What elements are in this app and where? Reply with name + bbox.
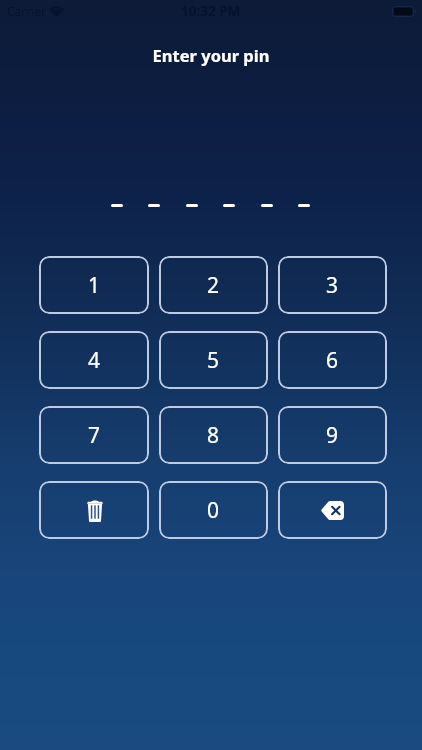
staticText: 2 xyxy=(207,271,220,300)
staticText: 3 xyxy=(326,271,339,300)
staticText: 7 xyxy=(88,421,101,450)
button[interactable]: 8 xyxy=(159,406,268,464)
button[interactable]: 0 xyxy=(159,481,268,539)
staticText: 10:32 PM xyxy=(181,2,241,20)
button[interactable]: 4 xyxy=(39,331,149,389)
button[interactable]: Clear xyxy=(39,481,149,539)
button[interactable]: 9 xyxy=(278,406,387,464)
staticText: 8 xyxy=(207,421,220,450)
staticText: 0 xyxy=(207,496,220,525)
button[interactable]: 2 xyxy=(159,256,268,314)
staticText: 5 xyxy=(207,346,220,375)
staticText: 9 xyxy=(326,421,339,450)
button[interactable]: 7 xyxy=(39,406,149,464)
staticText: 4 xyxy=(88,346,101,375)
staticText: 1 xyxy=(88,271,101,300)
staticText: 6 xyxy=(326,346,339,375)
button[interactable]: 1 xyxy=(39,256,149,314)
button[interactable]: 3 xyxy=(278,256,387,314)
staticText: Carrier xyxy=(7,3,47,19)
button[interactable]: 6 xyxy=(278,331,387,389)
button[interactable]: 5 xyxy=(159,331,268,389)
staticText: Enter your pin xyxy=(0,44,422,66)
button[interactable]: Backspace xyxy=(278,481,387,539)
